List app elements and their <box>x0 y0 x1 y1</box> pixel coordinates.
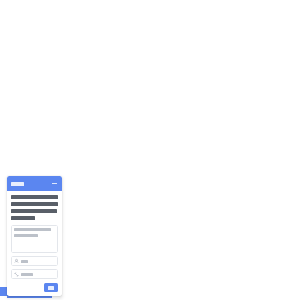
button[interactable]: Minimize <box>7 176 62 191</box>
button[interactable]: Message <box>11 225 58 253</box>
button[interactable]: Submit <box>44 283 58 292</box>
button[interactable]: Name <box>11 256 58 266</box>
button[interactable]: Minimize <box>51 180 58 187</box>
button[interactable]: Phone <box>11 269 58 279</box>
button[interactable]: Open chat <box>0 287 7 296</box>
